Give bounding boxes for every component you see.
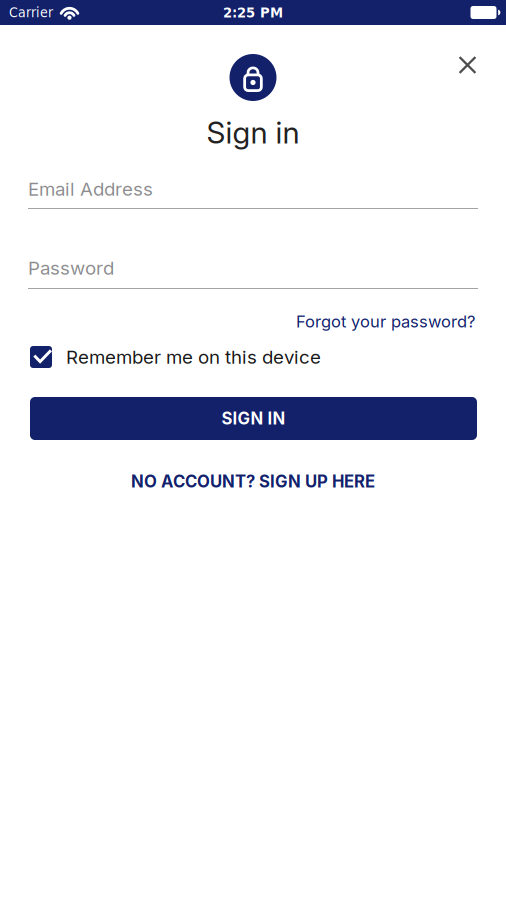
staticText: Remember me on this device bbox=[66, 346, 321, 368]
button[interactable]: SIGN IN bbox=[30, 397, 477, 440]
button[interactable]: Forgot your password? bbox=[296, 310, 475, 332]
staticText: 2:25 PM bbox=[223, 4, 283, 21]
staticText: Sign in bbox=[206, 114, 299, 151]
staticText: NO ACCOUNT? SIGN UP HERE bbox=[131, 471, 375, 492]
staticText: Carrier bbox=[9, 4, 53, 21]
button[interactable] bbox=[30, 346, 52, 368]
staticText: Password bbox=[28, 257, 114, 279]
staticText: SIGN IN bbox=[221, 408, 285, 429]
staticText: Email Address bbox=[28, 178, 153, 200]
staticText: Forgot your password? bbox=[296, 311, 475, 331]
button[interactable]: NO ACCOUNT? SIGN UP HERE bbox=[131, 469, 375, 493]
button[interactable] bbox=[459, 56, 476, 73]
